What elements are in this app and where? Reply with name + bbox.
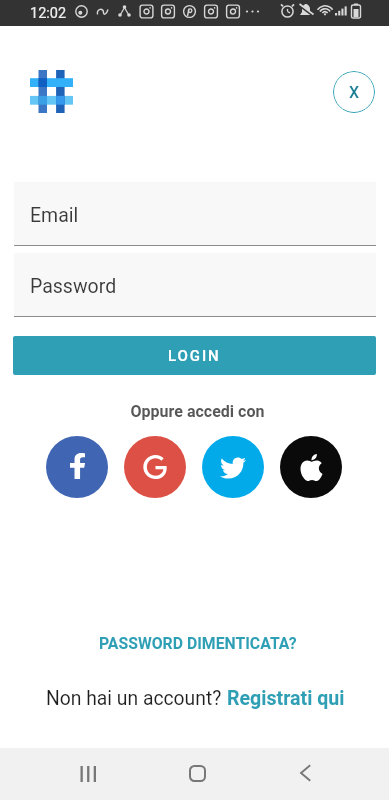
staticText: Registrati qui bbox=[227, 687, 345, 710]
button[interactable]: Sign in with Twitter bbox=[202, 436, 264, 498]
button[interactable]: Back bbox=[283, 751, 327, 795]
button[interactable]: LOGIN bbox=[13, 336, 376, 375]
staticText: X bbox=[349, 83, 360, 102]
staticText: Email bbox=[30, 204, 79, 227]
button[interactable]: Recent apps bbox=[66, 752, 110, 796]
button[interactable]: Password bbox=[14, 253, 376, 316]
staticText: LOGIN bbox=[168, 347, 221, 365]
button[interactable]: PASSWORD DIMENTICATA? bbox=[3, 632, 389, 654]
button[interactable]: Sign in with Facebook bbox=[46, 436, 108, 498]
button[interactable]: Close bbox=[333, 71, 375, 113]
button[interactable]: Email bbox=[14, 182, 376, 245]
button[interactable]: Sign in with Apple bbox=[280, 436, 342, 498]
button[interactable]: App logo bbox=[30, 70, 73, 113]
staticText: Oppure accedi con bbox=[3, 402, 389, 421]
staticText: PASSWORD DIMENTICATA? bbox=[99, 634, 297, 653]
staticText: Non hai un account? bbox=[46, 687, 227, 710]
button[interactable]: Registrati qui bbox=[227, 687, 345, 710]
button[interactable]: Home bbox=[175, 751, 219, 795]
staticText: 12:02 bbox=[30, 5, 67, 22]
staticText: Password bbox=[30, 275, 117, 298]
button[interactable]: Sign in with Google bbox=[124, 436, 186, 498]
